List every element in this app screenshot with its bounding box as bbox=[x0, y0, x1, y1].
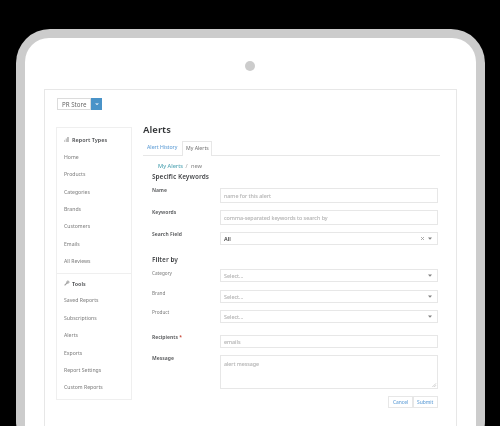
staticText: / bbox=[184, 162, 190, 170]
button[interactable]: Customers bbox=[56, 217, 132, 234]
button[interactable]: Custom Reports bbox=[56, 378, 132, 395]
button[interactable]: Categories bbox=[56, 183, 132, 200]
staticText: Categories bbox=[64, 188, 90, 195]
button[interactable]: My Alerts bbox=[182, 141, 212, 156]
staticText: Filter by bbox=[152, 255, 178, 264]
other: Open store menu bbox=[91, 98, 102, 110]
button[interactable]: Alerts bbox=[56, 326, 132, 343]
staticText: Subscriptions bbox=[64, 314, 97, 321]
staticText: Select... bbox=[224, 313, 244, 320]
staticText: Submit bbox=[417, 399, 434, 406]
button[interactable]: Brands bbox=[56, 200, 132, 217]
staticText: Exports bbox=[64, 349, 83, 356]
button[interactable]: Select... bbox=[220, 269, 438, 282]
staticText: Category bbox=[152, 270, 172, 276]
staticText: emails bbox=[224, 338, 241, 345]
button[interactable]: Submit bbox=[413, 396, 438, 408]
button[interactable]: emails bbox=[220, 335, 438, 348]
button[interactable]: Home bbox=[56, 148, 132, 165]
button[interactable]: Report Settings bbox=[56, 361, 132, 378]
button[interactable]: Select... bbox=[220, 310, 438, 323]
button[interactable]: Report Types bbox=[64, 135, 108, 143]
staticText: Tools bbox=[72, 280, 86, 287]
staticText: Select... bbox=[224, 272, 244, 279]
button[interactable]: name for this alert bbox=[220, 188, 438, 203]
staticText: Specific Keywords bbox=[152, 172, 209, 181]
staticText: Search Field bbox=[152, 231, 182, 238]
button[interactable]: Cancel bbox=[388, 396, 413, 408]
button[interactable]: alert message bbox=[220, 355, 438, 389]
staticText: PR Store bbox=[62, 100, 87, 108]
button[interactable]: All bbox=[220, 232, 438, 245]
staticText: Report Types bbox=[72, 136, 108, 143]
button[interactable]: comma-separated keywords to search by bbox=[220, 210, 438, 225]
staticText: Alert History bbox=[147, 143, 178, 150]
staticText: My Alerts bbox=[186, 144, 209, 151]
button[interactable]: Select... bbox=[220, 290, 438, 303]
staticText: Select... bbox=[224, 293, 244, 300]
staticText: * bbox=[178, 334, 183, 341]
staticText: Products bbox=[64, 170, 86, 177]
staticText: Saved Reports bbox=[64, 296, 99, 303]
button[interactable]: Alert History bbox=[143, 139, 182, 153]
staticText: new bbox=[191, 162, 203, 170]
staticText: Custom Reports bbox=[64, 383, 103, 390]
staticText: Keywords bbox=[152, 209, 177, 216]
button[interactable]: Saved Reports bbox=[56, 291, 132, 308]
staticText: Recipients bbox=[152, 334, 178, 341]
staticText: comma-separated keywords to search by bbox=[224, 214, 328, 221]
staticText: Product bbox=[152, 309, 170, 315]
button[interactable]: Exports bbox=[56, 344, 132, 361]
staticText: Brand bbox=[152, 290, 166, 296]
staticText: Alerts bbox=[64, 331, 78, 338]
button[interactable]: PR Store bbox=[57, 98, 102, 110]
button[interactable]: Subscriptions bbox=[56, 309, 132, 326]
staticText: All bbox=[224, 235, 231, 242]
staticText: Cancel bbox=[393, 399, 409, 406]
button[interactable]: Products bbox=[56, 165, 132, 182]
staticText: Customers bbox=[64, 222, 91, 229]
button[interactable]: Tools bbox=[64, 279, 86, 287]
button[interactable]: Emails bbox=[56, 235, 132, 252]
staticText: Name bbox=[152, 187, 167, 194]
staticText: Message bbox=[152, 355, 174, 362]
staticText: Emails bbox=[64, 240, 80, 247]
button[interactable]: My Alerts bbox=[158, 162, 183, 170]
staticText: All Reviews bbox=[64, 257, 91, 264]
button[interactable]: All Reviews bbox=[56, 252, 132, 269]
staticText: Report Settings bbox=[64, 366, 102, 373]
staticText: name for this alert bbox=[224, 192, 271, 199]
staticText: Home bbox=[64, 153, 79, 160]
staticText: Brands bbox=[64, 205, 82, 212]
staticText: Alerts bbox=[143, 123, 171, 136]
staticText: alert message bbox=[224, 360, 260, 367]
